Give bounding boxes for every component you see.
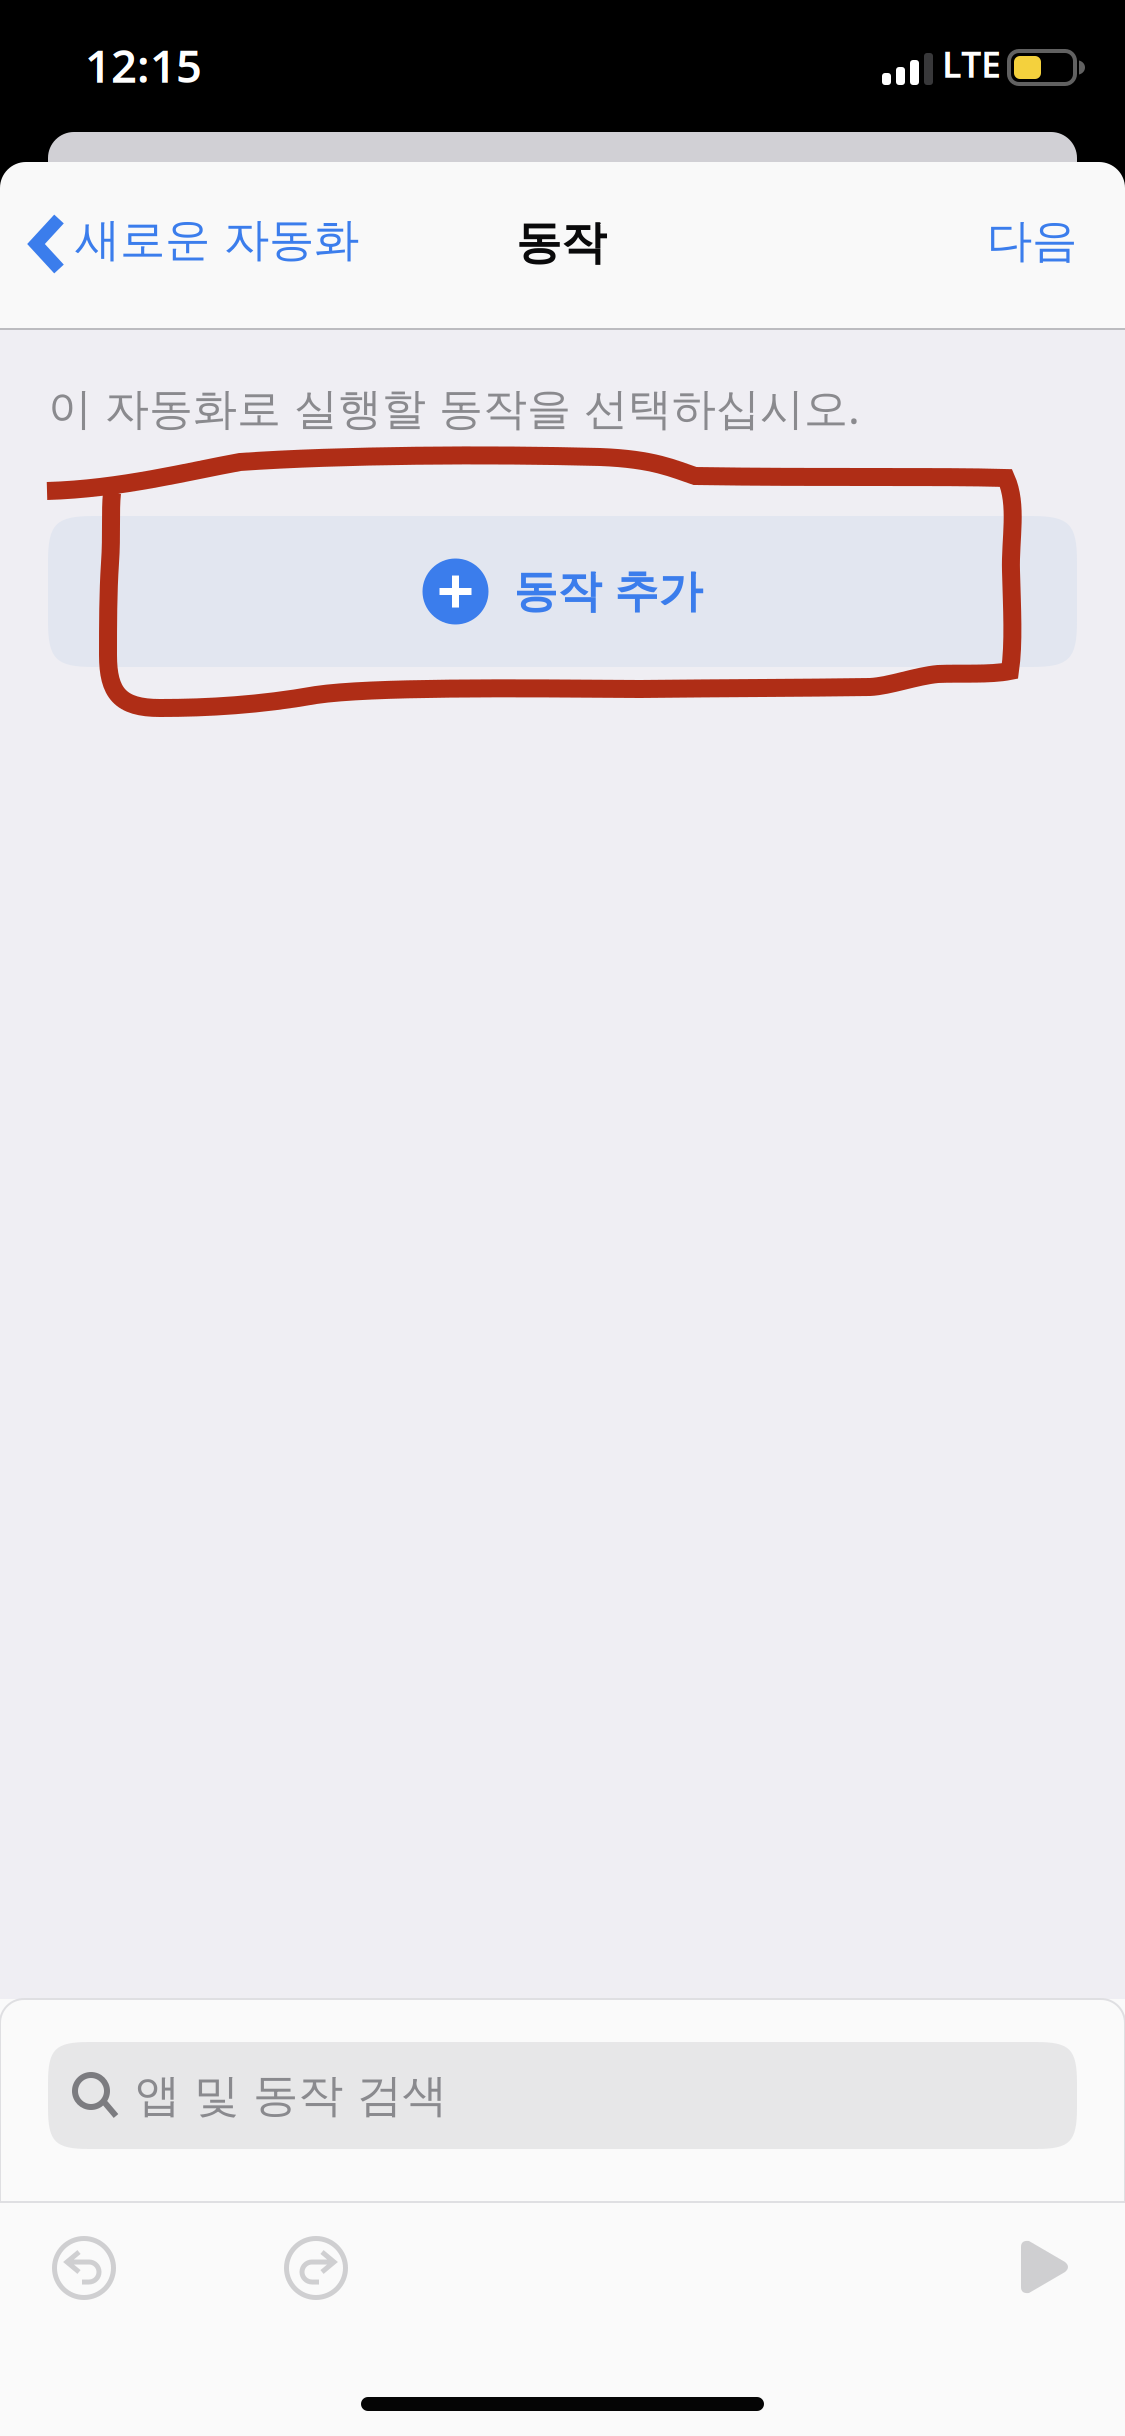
- button[interactable]: 단축어 실행: [1021, 2240, 1071, 2294]
- button[interactable]: 다시 실행: [284, 2236, 349, 2301]
- button[interactable]: 새로운 자동화: [19, 184, 381, 296]
- staticText: 동작 추가: [513, 564, 702, 618]
- button[interactable]: 동작 추가: [48, 516, 1077, 667]
- button[interactable]: 실행 취소: [52, 2236, 117, 2301]
- button[interactable]: 앱 및 동작 검색: [48, 2042, 1077, 2149]
- staticText: 앱 및 동작 검색: [135, 2068, 447, 2123]
- staticText: LTE: [942, 40, 1001, 88]
- staticText: 동작: [516, 215, 606, 271]
- staticText: 새로운 자동화: [75, 212, 359, 268]
- staticText: 이 자동화로 실행할 동작을 선택하십시오.: [48, 378, 860, 436]
- staticText: 다음: [987, 213, 1077, 269]
- staticText: 12:15: [85, 35, 202, 95]
- button[interactable]: 다음: [963, 193, 1101, 289]
